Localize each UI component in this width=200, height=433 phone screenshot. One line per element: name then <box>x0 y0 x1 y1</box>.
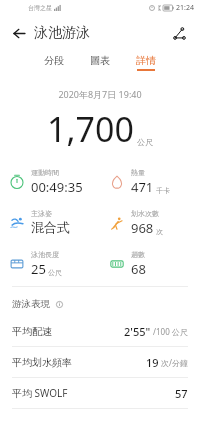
button[interactable]: 主泳姿 <box>0 209 100 235</box>
staticText: 2'55" <box>124 324 151 339</box>
staticText: /100 公尺 <box>153 326 188 337</box>
staticText: 00:49:35 <box>31 178 83 196</box>
staticText: 21:24 <box>176 3 194 13</box>
staticText: 運動時間 <box>31 168 59 177</box>
staticText: 熱量 <box>131 168 145 177</box>
staticText: 分段 <box>44 54 64 67</box>
staticText: 游泳表現 <box>12 298 50 310</box>
staticText: 25 <box>31 260 46 278</box>
staticText: 次 <box>156 227 163 236</box>
staticText: 圖表 <box>90 54 110 67</box>
staticText: 千卡 <box>156 186 170 195</box>
staticText: 57 <box>175 386 188 401</box>
staticText: 19 <box>146 355 159 370</box>
button[interactable]: 平均配速 <box>0 316 200 346</box>
staticText: 次/分鐘 <box>161 357 188 368</box>
button[interactable]: 分段 <box>42 53 66 72</box>
staticText: 趟數 <box>131 250 145 259</box>
staticText: 平均 SWOLF <box>12 386 68 400</box>
button[interactable]: 平均 SWOLF <box>0 378 200 408</box>
staticText: 471 <box>131 178 154 196</box>
staticText: 公尺 <box>48 268 62 277</box>
button[interactable]: 熱量 <box>100 168 200 196</box>
staticText: 公尺 <box>137 137 153 147</box>
staticText: 划水次數 <box>131 209 159 218</box>
button[interactable]: 運動時間 <box>0 168 100 196</box>
button[interactable]: 平均划水頻率 <box>0 347 200 377</box>
button[interactable]: Back <box>6 20 32 46</box>
staticText: 泳池游泳 <box>34 24 90 42</box>
button[interactable]: Info <box>53 298 65 310</box>
button[interactable]: 詳情 <box>134 53 158 72</box>
staticText: 台灣之星 <box>28 4 52 12</box>
staticText: 2020年8月7日 19:40 <box>0 88 200 100</box>
staticText: 平均划水頻率 <box>12 356 72 369</box>
button[interactable]: 圖表 <box>88 53 112 72</box>
staticText: 泳池長度 <box>31 250 59 259</box>
staticText: 主泳姿 <box>31 209 52 218</box>
staticText: 1,700 <box>47 106 134 152</box>
staticText: 68 <box>131 260 146 278</box>
staticText: 968 <box>131 219 154 237</box>
button[interactable]: Share <box>166 20 192 46</box>
staticText: 混合式 <box>31 219 70 235</box>
button[interactable]: 划水次數 <box>100 209 200 237</box>
staticText: 平均配速 <box>12 325 52 338</box>
button[interactable]: 趟數 <box>100 250 200 278</box>
staticText: 詳情 <box>136 54 156 67</box>
button[interactable]: 泳池長度 <box>0 250 100 278</box>
